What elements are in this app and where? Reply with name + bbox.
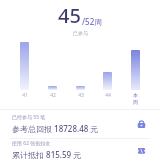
button[interactable]: 查看总回报明细 xyxy=(134,117,148,131)
staticText: /52周 xyxy=(82,16,103,27)
staticText: 参考总回报 18728.48 元 xyxy=(12,123,99,134)
button[interactable]: 查看抵扣金明细 xyxy=(134,143,148,157)
staticText: 累计抵扣 815.59 元 xyxy=(12,149,82,160)
staticText: 45 xyxy=(58,2,81,29)
staticText: 43 xyxy=(78,92,84,99)
staticText: 已经参与 55 笔 xyxy=(12,114,46,121)
staticText: 41 xyxy=(22,92,28,99)
staticText: 已参与 xyxy=(73,30,88,36)
staticText: 使用 62 张抵扣金 xyxy=(12,140,51,147)
staticText: 本周 xyxy=(131,92,140,106)
button[interactable]: 使用 62 张抵扣金 xyxy=(0,139,160,160)
staticText: 42 xyxy=(50,92,56,99)
button[interactable]: 已经参与 55 笔 xyxy=(0,110,160,138)
staticText: 44 xyxy=(105,92,111,99)
